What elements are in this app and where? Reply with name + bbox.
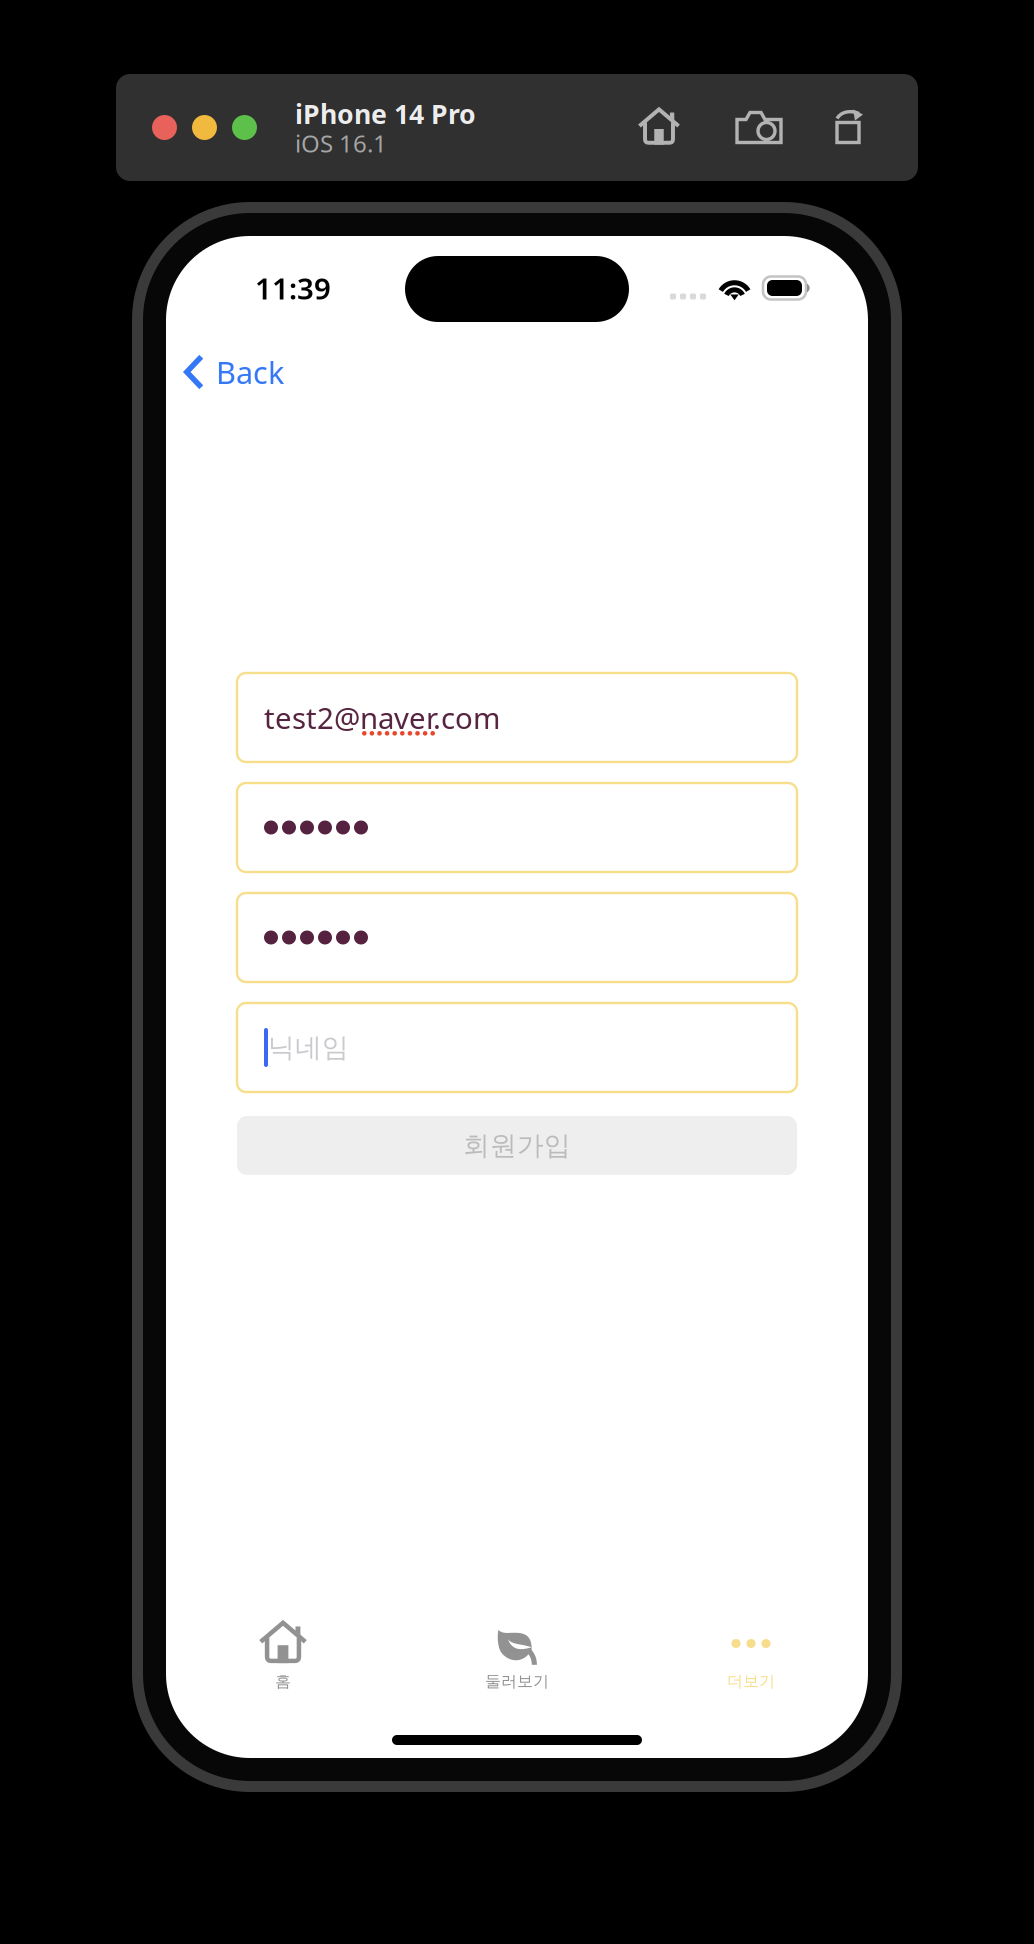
button[interactable]: Screenshot	[709, 97, 809, 157]
button[interactable]: Close	[152, 115, 177, 140]
button[interactable]: Back	[166, 332, 300, 412]
staticText: test2@naver.com	[264, 698, 500, 737]
button[interactable]: 둘러보기	[400, 1621, 634, 1697]
staticText: iOS 16.1	[295, 127, 387, 159]
staticText: 둘러보기	[485, 1671, 549, 1691]
staticText: 11:39	[255, 268, 331, 307]
button[interactable]: Zoom	[232, 115, 257, 140]
staticText: 회원가입	[463, 1129, 571, 1162]
button[interactable]: 회원가입	[237, 1116, 797, 1175]
button[interactable]: 홈	[166, 1621, 400, 1697]
staticText: 닉네임	[268, 1031, 349, 1064]
button[interactable]: Rotate	[809, 97, 887, 157]
staticText: iPhone 14 Pro	[295, 96, 476, 131]
staticText: Back	[216, 352, 284, 392]
button[interactable]: Minimise	[192, 115, 217, 140]
button[interactable]: Home	[609, 97, 709, 157]
staticText: 홈	[275, 1671, 291, 1691]
button[interactable]: 더보기	[634, 1621, 868, 1697]
staticText: 더보기	[727, 1671, 775, 1691]
